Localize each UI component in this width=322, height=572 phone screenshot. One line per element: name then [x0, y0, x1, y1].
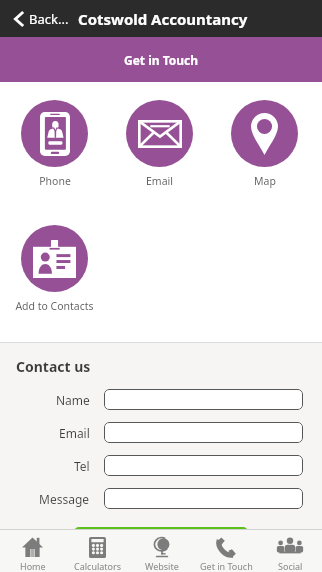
button[interactable]	[104, 422, 303, 443]
staticText: Email	[146, 174, 173, 188]
staticText: Get in Touch	[124, 52, 199, 68]
button[interactable]: Website	[130, 529, 194, 572]
staticText: Website	[145, 560, 179, 572]
staticText: Send	[145, 533, 177, 551]
button[interactable]: Phone	[21, 100, 88, 188]
staticText: Cotswold Accountancy	[78, 9, 248, 29]
staticText: Map	[254, 174, 276, 188]
staticText: Email	[59, 425, 90, 441]
staticText: Message	[39, 491, 90, 507]
button[interactable]	[104, 488, 303, 509]
staticText: Back...	[29, 10, 69, 28]
staticText: Name	[56, 392, 90, 408]
button[interactable]: Home	[0, 529, 65, 572]
button[interactable]: Email	[126, 100, 193, 188]
staticText: Tel	[74, 458, 90, 474]
button[interactable]: Calculators	[65, 529, 130, 572]
staticText: Calculators	[74, 560, 122, 572]
button[interactable]: Back...	[0, 5, 75, 33]
button[interactable]: Social	[258, 529, 322, 572]
staticText: Add to Contacts	[15, 299, 94, 313]
staticText: Phone	[39, 174, 71, 188]
button[interactable]: Get in Touch	[194, 529, 258, 572]
staticText: Get in Touch	[200, 560, 253, 572]
button[interactable]: Add to Contacts	[21, 225, 88, 313]
button[interactable]: Get in Touch	[0, 37, 322, 82]
staticText: Contact us	[16, 357, 91, 376]
button[interactable]: Map	[231, 100, 298, 188]
button[interactable]	[104, 389, 303, 410]
staticText: Home	[20, 560, 46, 572]
staticText: Social	[278, 560, 303, 572]
button[interactable]: Send	[74, 527, 248, 557]
button[interactable]	[104, 455, 303, 476]
